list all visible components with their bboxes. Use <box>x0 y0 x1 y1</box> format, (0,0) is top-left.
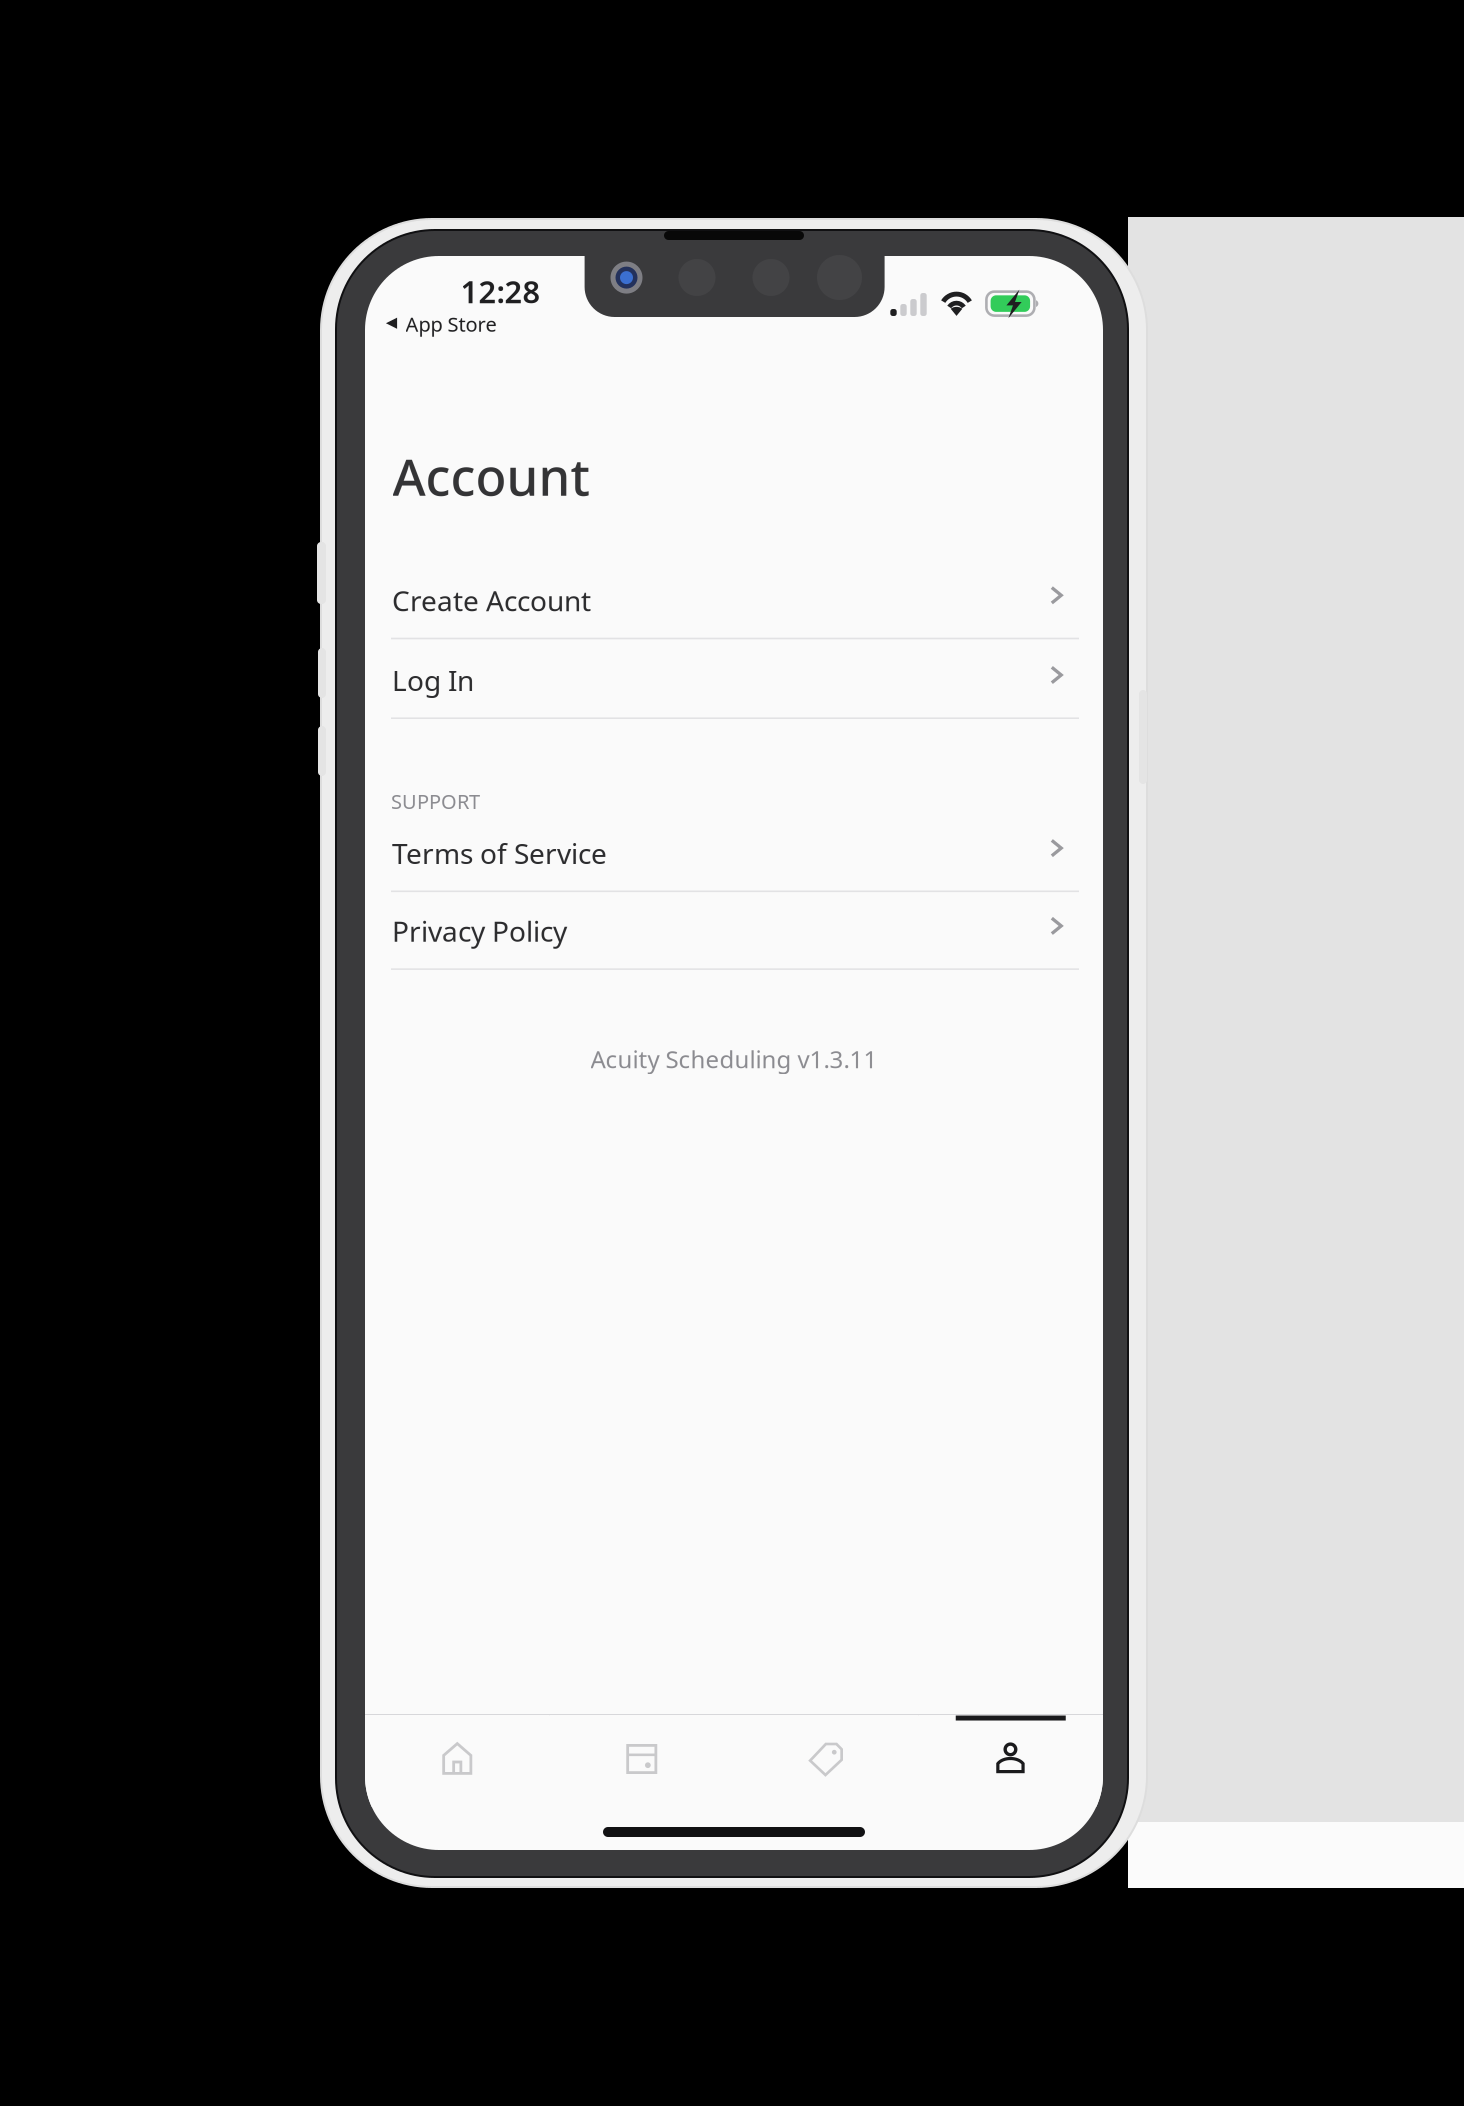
button[interactable]: Create Account <box>365 579 1103 639</box>
staticText: Privacy Policy <box>392 912 567 950</box>
staticText: Account <box>392 442 589 510</box>
button[interactable]: Home <box>365 1715 549 1807</box>
staticText: Create Account <box>392 582 591 619</box>
button[interactable]: Account <box>918 1715 1103 1807</box>
button[interactable]: Log In <box>365 659 1103 719</box>
button[interactable]: Terms of Service <box>365 832 1103 892</box>
button[interactable]: Privacy Policy <box>365 910 1103 970</box>
staticText: Terms of Service <box>392 835 607 872</box>
staticText: 12:28 <box>460 271 540 312</box>
button[interactable]: Back to App Store <box>365 312 525 336</box>
staticText: Acuity Scheduling v1.3.11 <box>590 1043 877 1075</box>
staticText: SUPPORT <box>391 788 480 815</box>
staticText: App Store <box>405 311 496 337</box>
staticText: Log In <box>392 661 474 699</box>
button[interactable]: Offers <box>734 1715 918 1807</box>
button[interactable]: Appointments <box>549 1715 734 1807</box>
